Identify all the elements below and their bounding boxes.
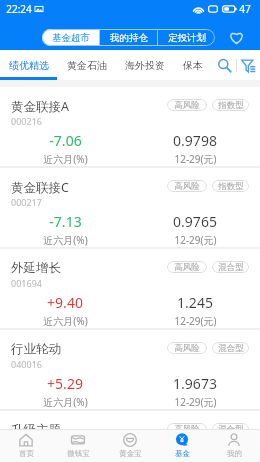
staticText: 升级主题 (11, 422, 61, 438)
button[interactable]: 基金超市 (42, 29, 99, 46)
staticText: 我的 (227, 449, 242, 458)
staticText: 12-29(元) (174, 395, 217, 409)
staticText: 000217 (11, 196, 42, 208)
staticText: 黄金石油 (67, 59, 107, 72)
button[interactable]: 保本 (174, 50, 212, 80)
staticText: 0.9765 (173, 212, 217, 231)
button[interactable]: 定投计划 (158, 29, 215, 46)
staticText: 近六月(%) (43, 152, 88, 166)
staticText: 1.245 (177, 293, 213, 312)
staticText: +3.12 (47, 455, 83, 462)
button[interactable]: 我的 (208, 429, 260, 462)
staticText: 基金 (175, 449, 190, 458)
button[interactable]: 首页 (0, 429, 52, 462)
staticText: 混合型 (218, 424, 244, 435)
button[interactable]: 升级主题 (0, 411, 260, 462)
staticText: 混合型 (218, 343, 244, 354)
staticText: 001694 (11, 277, 42, 289)
staticText: 高风险 (174, 181, 200, 192)
button[interactable]: 海外投资 (116, 50, 174, 80)
staticText: 1.3420 (173, 455, 217, 462)
button[interactable]: 搜索 (212, 50, 236, 80)
staticText: 绩优精选 (9, 59, 49, 72)
staticText: 我的持仓 (110, 32, 148, 44)
staticText: -7.06 (49, 131, 82, 150)
staticText: 040016 (11, 358, 42, 370)
staticText: 海外投资 (125, 59, 165, 72)
staticText: 基金超市 (52, 32, 90, 44)
staticText: 黄金联接C (11, 179, 69, 196)
staticText: 近六月(%) (43, 314, 88, 328)
staticText: 000216 (11, 115, 42, 127)
staticText: 12-29(元) (174, 233, 217, 247)
staticText: 0.9798 (173, 131, 217, 150)
staticText: 黄金联接A (11, 98, 69, 115)
button[interactable]: 外延增长 (0, 249, 260, 328)
staticText: 1.9673 (173, 374, 217, 393)
staticText: 高风险 (174, 100, 200, 111)
staticText: 47 (239, 2, 251, 16)
staticText: 混合型 (218, 262, 244, 273)
staticText: 12-29(元) (174, 314, 217, 328)
staticText: 22:24 (6, 2, 32, 16)
button[interactable]: 基金 (156, 429, 208, 462)
staticText: 首页 (19, 449, 34, 458)
staticText: +9.40 (47, 293, 83, 312)
staticText: 行业轮动 (11, 341, 61, 357)
staticText: 高风险 (174, 424, 200, 435)
staticText: +5.29 (47, 374, 83, 393)
staticText: 12-29(元) (174, 152, 217, 166)
staticText: 外延增长 (11, 260, 61, 276)
button[interactable]: 黄金宝 (104, 429, 156, 462)
staticText: 近六月(%) (43, 233, 88, 247)
button[interactable]: 我的持仓 (100, 29, 157, 46)
staticText: -7.13 (49, 212, 82, 231)
button[interactable]: 黄金联接C (0, 168, 260, 247)
staticText: 高风险 (174, 343, 200, 354)
button[interactable]: 黄金石油 (58, 50, 116, 80)
button[interactable]: 收藏 (226, 27, 246, 47)
staticText: 微钱宝 (67, 449, 90, 458)
staticText: 近六月(%) (43, 395, 88, 409)
button[interactable]: 绩优精选 (0, 50, 58, 80)
button[interactable]: 筛选 (237, 50, 260, 80)
staticText: 指数型 (218, 181, 244, 192)
staticText: 保本 (183, 59, 203, 72)
button[interactable]: 黄金联接A (0, 87, 260, 166)
staticText: 黄金宝 (119, 449, 142, 458)
staticText: 001877 (11, 439, 42, 451)
staticText: 高风险 (174, 262, 200, 273)
button[interactable]: 行业轮动 (0, 330, 260, 409)
staticText: 指数型 (218, 100, 244, 111)
staticText: 定投计划 (168, 32, 206, 44)
button[interactable]: 微钱宝 (52, 429, 104, 462)
